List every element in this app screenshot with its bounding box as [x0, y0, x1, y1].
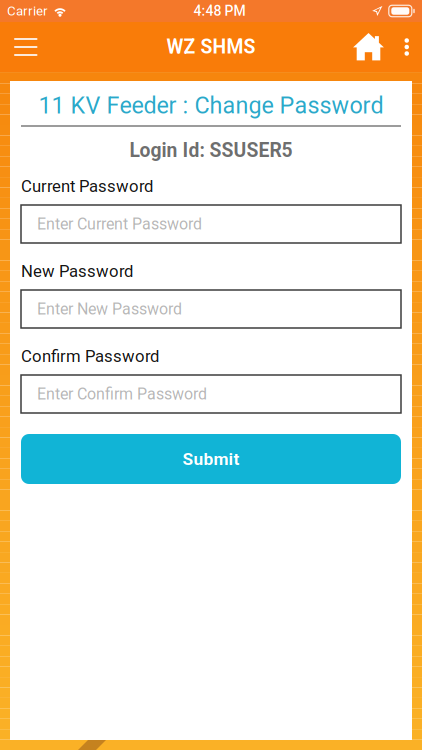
staticText: 11 KV Feeder : Change Password: [38, 92, 383, 119]
button[interactable]: Menu: [0, 22, 51, 72]
staticText: New Password: [21, 261, 133, 281]
staticText: Confirm Password: [21, 346, 159, 366]
staticText: 4:48 PM: [193, 3, 245, 19]
staticText: Enter New Password: [37, 300, 182, 318]
staticText: Enter Current Password: [37, 215, 202, 233]
button[interactable]: Submit: [21, 434, 401, 484]
staticText: Carrier: [7, 3, 48, 19]
button[interactable]: More options: [393, 22, 422, 72]
staticText: Current Password: [21, 176, 153, 196]
staticText: Submit: [182, 449, 239, 469]
staticText: Login Id: SSUSER5: [129, 139, 292, 162]
staticText: Enter Confirm Password: [37, 385, 207, 403]
button[interactable]: Home: [339, 22, 393, 72]
staticText: WZ SHMS: [166, 36, 255, 58]
